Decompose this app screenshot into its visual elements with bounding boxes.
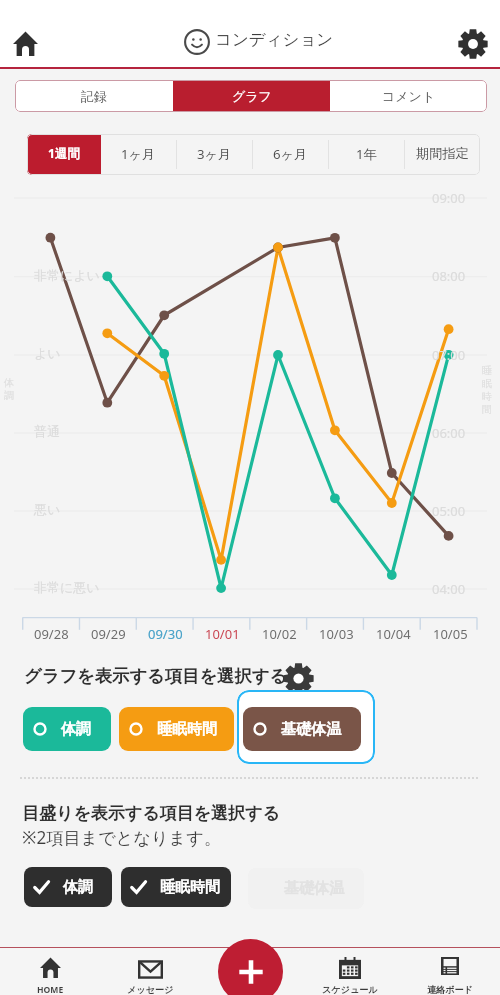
button[interactable]: Add [218, 939, 283, 995]
staticText: 悪い [34, 501, 61, 517]
staticText: 体 [4, 376, 14, 389]
button[interactable]: グラフ [173, 80, 330, 112]
staticText: 09/28 [34, 625, 69, 643]
button[interactable]: 睡眠時間 [121, 867, 231, 907]
staticText: 10/03 [319, 625, 354, 643]
button[interactable]: 基礎体温 [243, 707, 361, 751]
staticText: 10/04 [376, 625, 411, 643]
staticText: HOME [37, 984, 64, 995]
staticText: 1週間 [48, 145, 80, 162]
staticText: スケジュール [322, 984, 378, 995]
staticText: 07:00 [432, 346, 466, 364]
staticText: 期間指定 [416, 145, 469, 162]
staticText: 連絡ボード [427, 984, 473, 995]
button[interactable]: 1ヶ月 [101, 134, 176, 175]
staticText: 1ヶ月 [121, 145, 156, 163]
button[interactable]: 1週間 [27, 134, 101, 175]
button[interactable]: Home [3, 21, 47, 65]
staticText: 04:00 [432, 580, 466, 598]
staticText: 6ヶ月 [273, 145, 308, 163]
staticText: 記録 [81, 88, 107, 104]
button[interactable]: メッセージ [100, 950, 200, 995]
staticText: グラフ [232, 88, 272, 104]
button[interactable]: コメント [330, 80, 487, 112]
staticText: 時 [482, 390, 492, 403]
staticText: 10/05 [433, 625, 468, 643]
staticText: グラフを表示する項目を選択する [24, 665, 288, 687]
button[interactable]: 睡眠時間 [119, 707, 234, 751]
button[interactable]: スケジュール [300, 950, 400, 995]
staticText: 06:00 [432, 424, 466, 442]
staticText: メッセージ [127, 984, 174, 995]
staticText: よい [34, 345, 61, 361]
button[interactable]: 体調 [23, 707, 111, 751]
staticText: 体調 [61, 720, 91, 739]
button[interactable]: 記録 [15, 80, 173, 112]
staticText: 10/02 [262, 625, 297, 643]
button[interactable]: 連絡ボード [400, 950, 500, 995]
staticText: 基礎体温 [284, 879, 344, 898]
button[interactable]: 体調 [24, 867, 112, 907]
staticText: 05:00 [432, 502, 466, 520]
staticText: 10/01 [205, 625, 240, 643]
staticText: ※2項目までとなります。 [22, 826, 221, 849]
button[interactable]: HOME [0, 950, 100, 995]
staticText: 間 [482, 403, 492, 416]
staticText: コンディション [215, 29, 334, 50]
staticText: 眠 [482, 377, 492, 390]
staticText: 3ヶ月 [197, 145, 232, 163]
staticText: 09/29 [91, 625, 126, 643]
staticText: 非常に悪い [34, 579, 100, 595]
button[interactable]: 1年 [329, 134, 404, 175]
staticText: 体調 [63, 878, 93, 897]
staticText: 睡眠時間 [160, 878, 220, 897]
button[interactable]: 3ヶ月 [177, 134, 252, 175]
staticText: 非常によい [34, 267, 100, 283]
staticText: 08:00 [432, 267, 466, 285]
button[interactable]: Settings [447, 18, 499, 70]
staticText: 睡 [482, 364, 492, 377]
staticText: 1年 [356, 145, 377, 163]
staticText: 調 [4, 389, 14, 402]
button[interactable]: 6ヶ月 [253, 134, 328, 175]
button[interactable]: 期間指定 [405, 134, 480, 175]
staticText: 09:00 [432, 189, 466, 207]
staticText: 睡眠時間 [157, 720, 217, 739]
staticText: 普通 [34, 423, 60, 439]
staticText: 09/30 [148, 625, 183, 643]
staticText: 目盛りを表示する項目を選択する [22, 803, 280, 824]
staticText: 基礎体温 [281, 720, 341, 739]
staticText: コメント [382, 88, 436, 104]
button[interactable]: 基礎体温 [248, 868, 364, 909]
